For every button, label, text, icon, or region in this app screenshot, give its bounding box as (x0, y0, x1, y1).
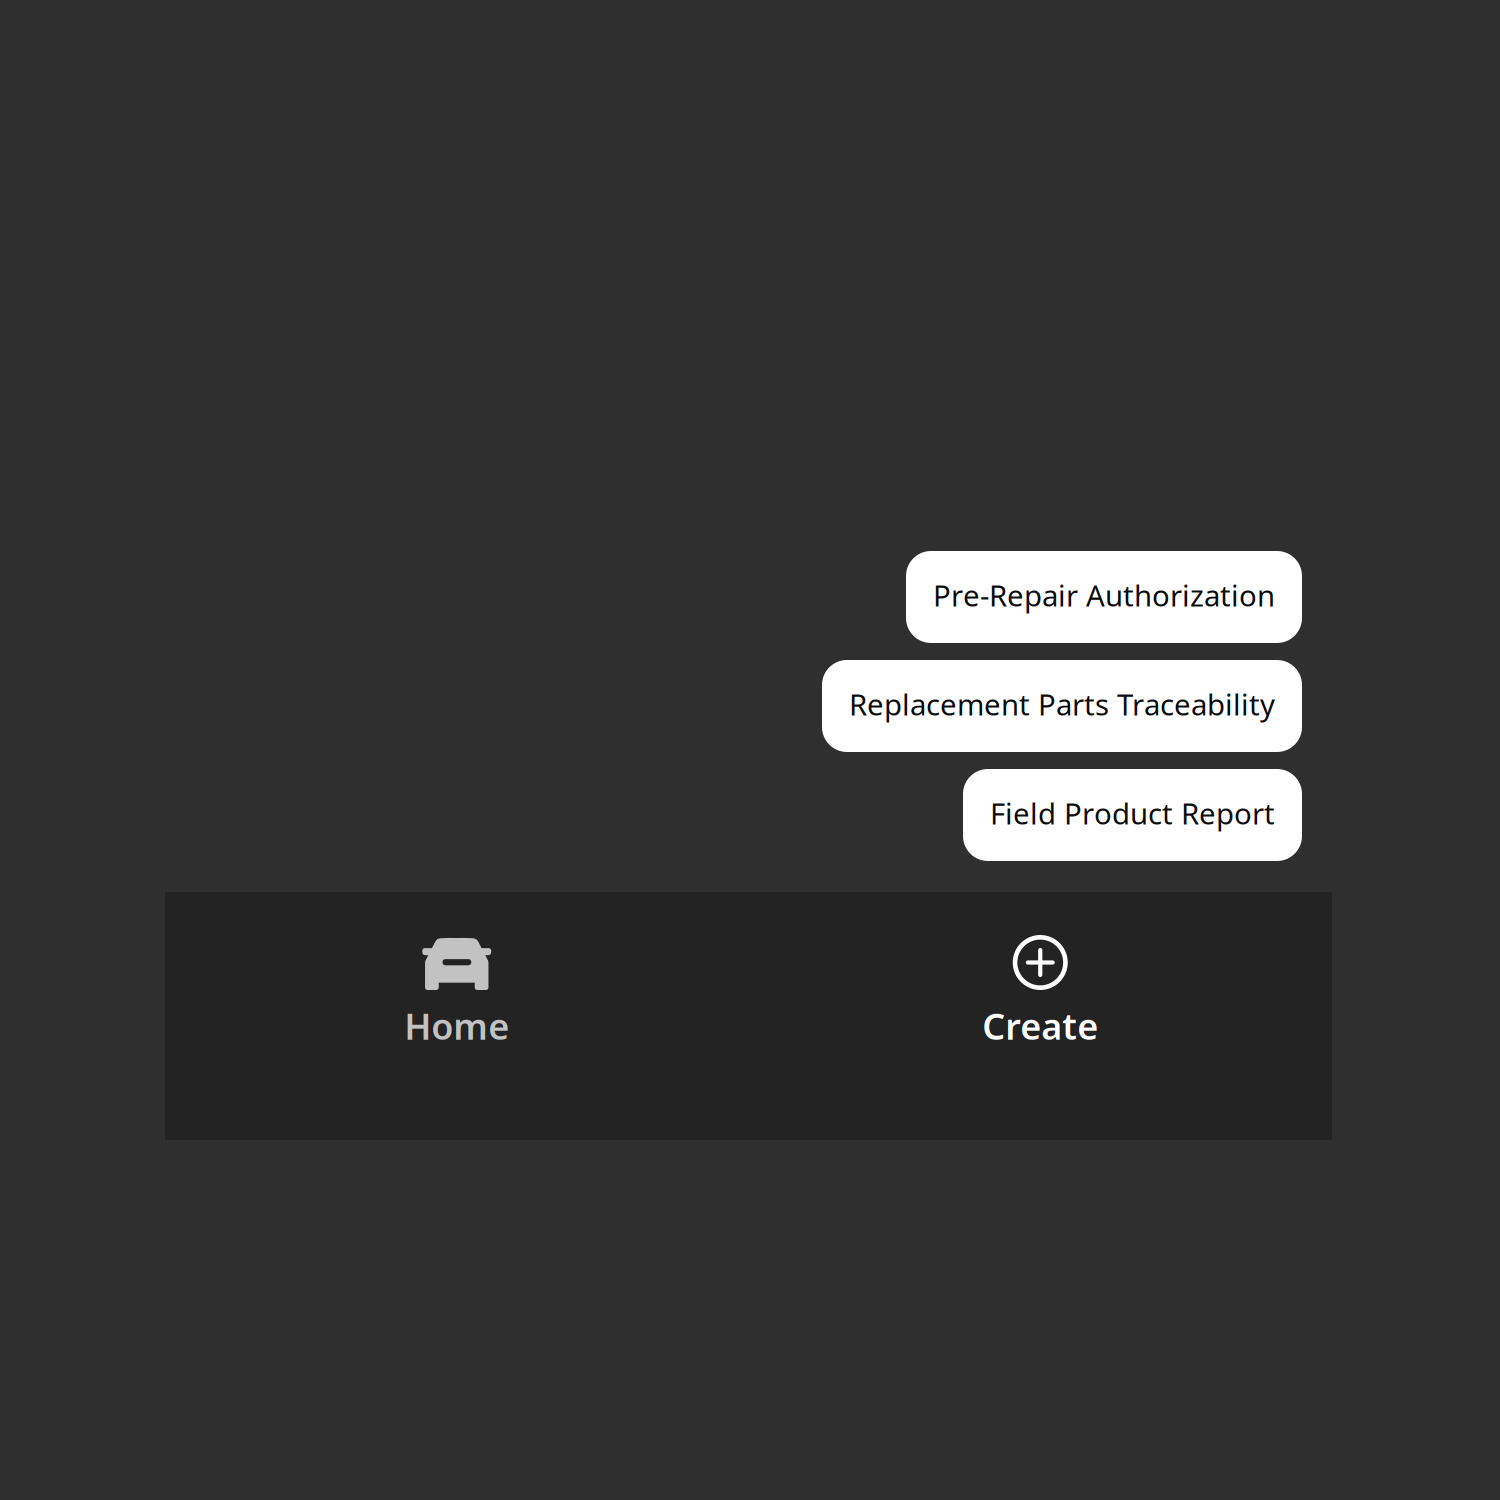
button[interactable]: Home (165, 892, 748, 1140)
button[interactable]: Pre-Repair Authorization (906, 551, 1302, 643)
staticText: Field Product Report (990, 793, 1275, 832)
button[interactable]: Field Product Report (963, 769, 1302, 861)
staticText: Create (982, 1002, 1098, 1050)
staticText: Pre-Repair Authorization (933, 575, 1275, 614)
button[interactable]: Replacement Parts Traceability (822, 660, 1302, 752)
staticText: Replacement Parts Traceability (849, 684, 1275, 723)
button[interactable]: Create (748, 892, 1332, 1140)
staticText: Home (404, 1002, 509, 1050)
